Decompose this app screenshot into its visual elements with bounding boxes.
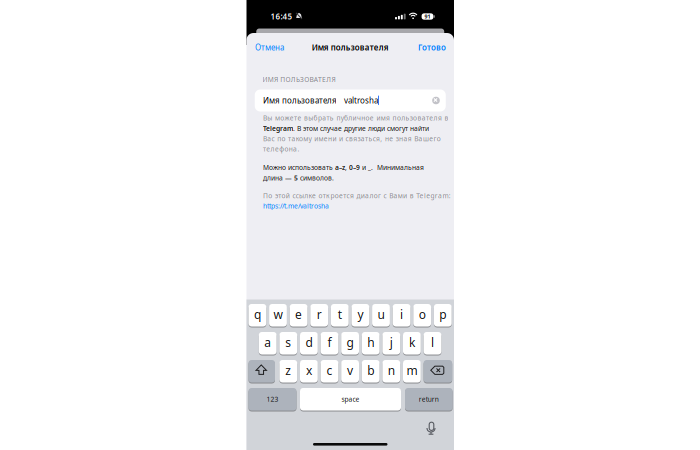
button[interactable]: t bbox=[331, 303, 349, 327]
staticText: c bbox=[326, 362, 332, 378]
button[interactable]: k bbox=[403, 331, 421, 355]
staticText: p bbox=[439, 306, 446, 322]
staticText: return bbox=[419, 395, 439, 404]
button[interactable]: m bbox=[403, 359, 421, 383]
staticText: w bbox=[273, 306, 282, 322]
button[interactable]: n bbox=[382, 359, 400, 383]
button[interactable]: u bbox=[372, 303, 390, 327]
staticText: q bbox=[254, 306, 261, 322]
staticText: z bbox=[285, 362, 291, 378]
staticText: g bbox=[347, 334, 354, 350]
button[interactable]: e bbox=[290, 303, 307, 327]
button[interactable]: return bbox=[405, 387, 453, 411]
staticText: ИМЯ ПОЛЬЗОВАТЕЛЯ bbox=[262, 75, 335, 84]
button[interactable] bbox=[432, 96, 440, 104]
button[interactable] bbox=[424, 359, 452, 383]
button[interactable]: q bbox=[248, 303, 266, 327]
staticText: Можно использовать a–z, 0–9 и _. Минимал… bbox=[263, 163, 424, 172]
button[interactable]: w bbox=[269, 303, 287, 327]
button[interactable]: v bbox=[341, 359, 359, 383]
button[interactable]: c bbox=[321, 359, 338, 383]
staticText: https://t.me/valtrosha bbox=[263, 201, 329, 210]
staticText: v bbox=[347, 362, 353, 378]
button[interactable]: z bbox=[279, 359, 297, 383]
staticText: По этой ссылке откроется диалог с Вами в… bbox=[263, 191, 451, 200]
staticText: 91 bbox=[424, 13, 430, 20]
staticText: j bbox=[390, 334, 393, 350]
staticText: h bbox=[367, 334, 374, 350]
staticText: i bbox=[400, 306, 403, 322]
staticText: n bbox=[388, 362, 395, 378]
staticText: u bbox=[377, 306, 384, 322]
button[interactable]: d bbox=[300, 331, 318, 355]
staticText: Telegram. В этом случае другие люди смог… bbox=[263, 124, 429, 133]
staticText: телефона. bbox=[263, 144, 299, 153]
button[interactable]: Готово bbox=[386, 42, 446, 53]
staticText: o bbox=[419, 306, 426, 322]
button[interactable]: b bbox=[362, 359, 380, 383]
button[interactable]: 123 bbox=[248, 387, 296, 411]
staticText: Имя пользователя bbox=[312, 42, 389, 53]
button[interactable]: p bbox=[434, 303, 452, 327]
button[interactable]: i bbox=[393, 303, 410, 327]
button[interactable] bbox=[424, 421, 438, 437]
staticText: y bbox=[357, 306, 363, 322]
staticText: Вы можете выбрать публичное имя пользова… bbox=[263, 114, 448, 122]
staticText: l bbox=[431, 334, 434, 350]
staticText: 16:45 bbox=[270, 11, 292, 22]
button[interactable]: h bbox=[362, 331, 380, 355]
staticText: d bbox=[305, 334, 312, 350]
button[interactable]: l bbox=[424, 331, 441, 355]
button[interactable]: Отмена bbox=[255, 42, 315, 53]
button[interactable]: a bbox=[259, 331, 277, 355]
staticText: Вас по такому имени и связаться, не зная… bbox=[263, 134, 441, 143]
staticText: r bbox=[317, 306, 322, 322]
staticText: f bbox=[327, 334, 331, 350]
button[interactable]: g bbox=[341, 331, 359, 355]
button[interactable]: j bbox=[382, 331, 400, 355]
button[interactable]: space bbox=[300, 387, 401, 411]
staticText: m bbox=[406, 362, 417, 378]
staticText: Готово bbox=[418, 42, 446, 53]
button[interactable]: o bbox=[413, 303, 431, 327]
staticText: Отмена bbox=[255, 42, 284, 53]
button[interactable] bbox=[248, 359, 275, 383]
staticText: s bbox=[285, 334, 291, 350]
staticText: 123 bbox=[266, 395, 278, 404]
staticText: длина — 5 символов. bbox=[263, 173, 334, 182]
staticText: a bbox=[264, 334, 271, 350]
button[interactable]: y bbox=[351, 303, 369, 327]
button[interactable]: r bbox=[310, 303, 328, 327]
staticText: Имя пользователя bbox=[263, 95, 337, 106]
staticText: valtrosha bbox=[344, 95, 378, 106]
staticText: t bbox=[338, 306, 342, 322]
staticText: b bbox=[367, 362, 374, 378]
button[interactable]: x bbox=[300, 359, 318, 383]
button[interactable]: https://t.me/valtrosha bbox=[263, 201, 329, 210]
staticText: space bbox=[341, 395, 359, 404]
staticText: x bbox=[306, 362, 312, 378]
button[interactable]: s bbox=[279, 331, 297, 355]
button[interactable]: f bbox=[321, 331, 338, 355]
staticText: e bbox=[295, 306, 302, 322]
button[interactable] bbox=[255, 89, 446, 111]
staticText: k bbox=[409, 334, 415, 350]
